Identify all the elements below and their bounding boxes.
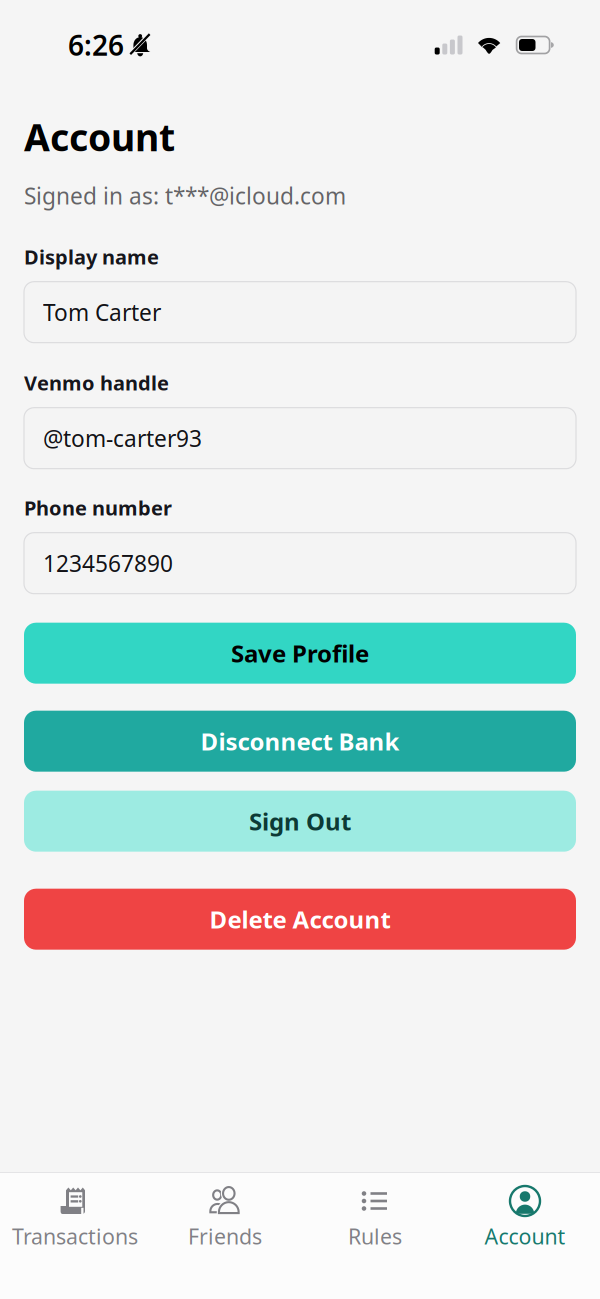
staticText: 1234567890: [43, 548, 173, 578]
button[interactable]: Delete Account: [24, 889, 576, 950]
staticText: Display name: [24, 243, 159, 270]
staticText: Delete Account: [209, 903, 390, 935]
staticText: Save Profile: [231, 637, 369, 669]
staticText: @tom-carter93: [43, 423, 202, 453]
staticText: Tom Carter: [43, 297, 161, 327]
staticText: Venmo handle: [24, 369, 169, 396]
staticText: Sign Out: [249, 805, 351, 837]
button[interactable]: Account: [450, 1173, 600, 1299]
button[interactable]: Sign Out: [24, 791, 576, 852]
staticText: 6:26: [68, 26, 124, 64]
button[interactable]: Rules: [300, 1173, 450, 1299]
staticText: Friends: [188, 1222, 262, 1250]
staticText: Disconnect Bank: [200, 725, 399, 757]
staticText: Rules: [348, 1222, 402, 1250]
button[interactable]: Disconnect Bank: [24, 711, 576, 772]
button[interactable]: Friends: [150, 1173, 300, 1299]
staticText: Account: [24, 112, 175, 162]
staticText: Signed in as: t***@icloud.com: [24, 181, 346, 211]
button[interactable]: Transactions: [0, 1173, 150, 1299]
staticText: Account: [484, 1222, 565, 1250]
staticText: Phone number: [24, 494, 172, 521]
staticText: Transactions: [12, 1222, 138, 1250]
button[interactable]: Save Profile: [24, 623, 576, 684]
